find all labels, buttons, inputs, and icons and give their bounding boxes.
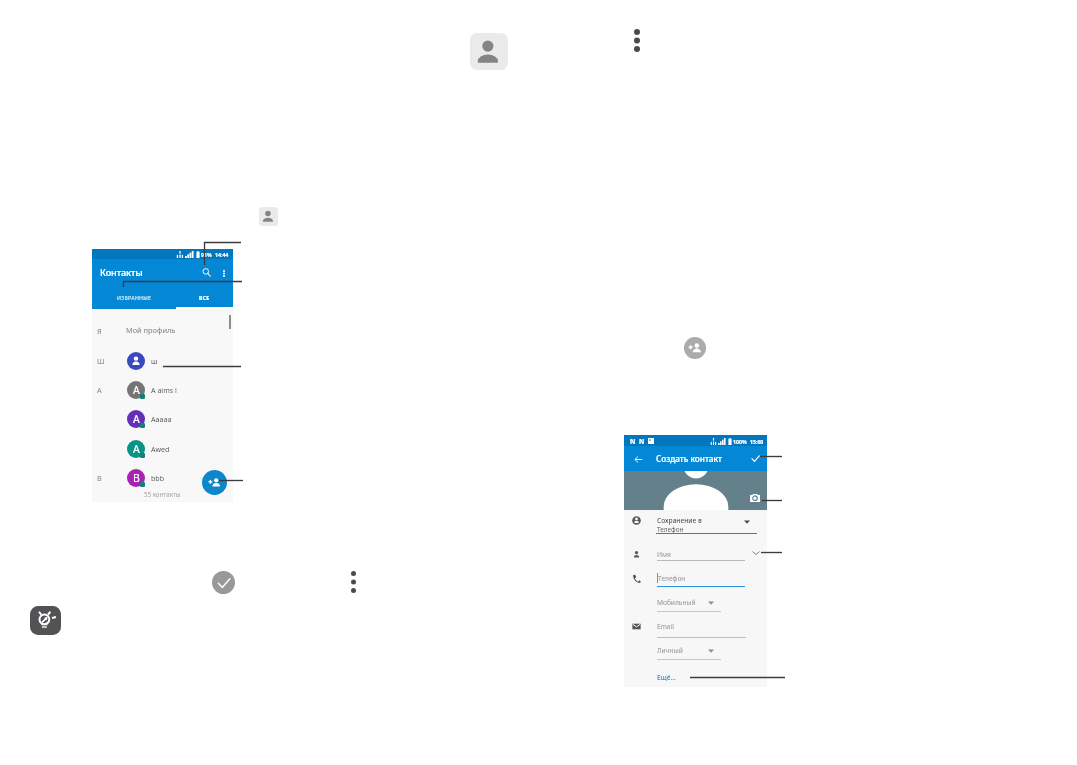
staticText: 15:00	[750, 438, 764, 445]
staticText: ВСЕ	[199, 294, 210, 301]
button[interactable]: More options	[351, 571, 356, 593]
staticText: Сохранение в	[657, 516, 702, 525]
button[interactable]: More options	[634, 29, 640, 52]
staticText: Email	[657, 622, 674, 631]
button[interactable]: Save	[747, 450, 763, 466]
staticText: Создать контакт	[656, 453, 722, 464]
staticText: 14:44	[215, 251, 229, 258]
staticText: B	[133, 471, 140, 485]
staticText: bbb	[151, 473, 165, 483]
button[interactable]: A	[92, 435, 233, 464]
staticText: Мобильный	[657, 598, 696, 607]
staticText: Имя	[657, 550, 671, 559]
button[interactable]: Change photo	[750, 494, 760, 502]
button[interactable]: Ш	[92, 347, 233, 376]
button[interactable]: Ещё...	[657, 673, 676, 682]
staticText: Ещё...	[657, 673, 676, 682]
staticText: Аааaa	[151, 414, 172, 424]
button[interactable]: A	[92, 405, 233, 434]
staticText: A	[133, 412, 140, 426]
button[interactable]: Search	[198, 264, 214, 280]
staticText: 91%	[201, 251, 212, 258]
button[interactable]: ВСЕ	[176, 285, 233, 309]
button[interactable]: Confirm	[212, 571, 235, 594]
button[interactable]: More options	[217, 266, 231, 280]
staticText: 55 контакты	[144, 490, 181, 498]
button[interactable]: Tip	[30, 606, 61, 635]
staticText: Личный	[657, 646, 683, 655]
button[interactable]: А	[92, 376, 233, 405]
staticText: Телефон	[658, 574, 686, 583]
staticText: А	[97, 385, 102, 395]
button[interactable]: Add contact	[684, 337, 706, 359]
staticText: ш	[151, 356, 158, 366]
staticText: A	[133, 442, 140, 456]
staticText: Я	[97, 326, 102, 336]
staticText: Мой профиль	[126, 325, 176, 335]
staticText: Awed	[151, 444, 170, 454]
staticText: Контакты	[100, 266, 143, 278]
staticText: N	[639, 437, 645, 446]
button[interactable]: ИЗБРАННЫЕ	[92, 285, 176, 309]
staticText: В	[97, 473, 102, 483]
staticText: 100%	[733, 438, 747, 445]
button[interactable]: Я	[92, 317, 233, 345]
staticText: ИЗБРАННЫЕ	[117, 294, 152, 301]
staticText: N	[630, 437, 636, 446]
staticText: A aims l	[151, 385, 177, 395]
staticText: A	[133, 383, 140, 397]
button[interactable]: В	[92, 464, 233, 493]
button[interactable]: Back	[630, 451, 646, 467]
staticText: Ш	[97, 356, 105, 366]
button[interactable]: Add contact	[202, 470, 227, 495]
staticText: Телефон	[657, 525, 684, 534]
